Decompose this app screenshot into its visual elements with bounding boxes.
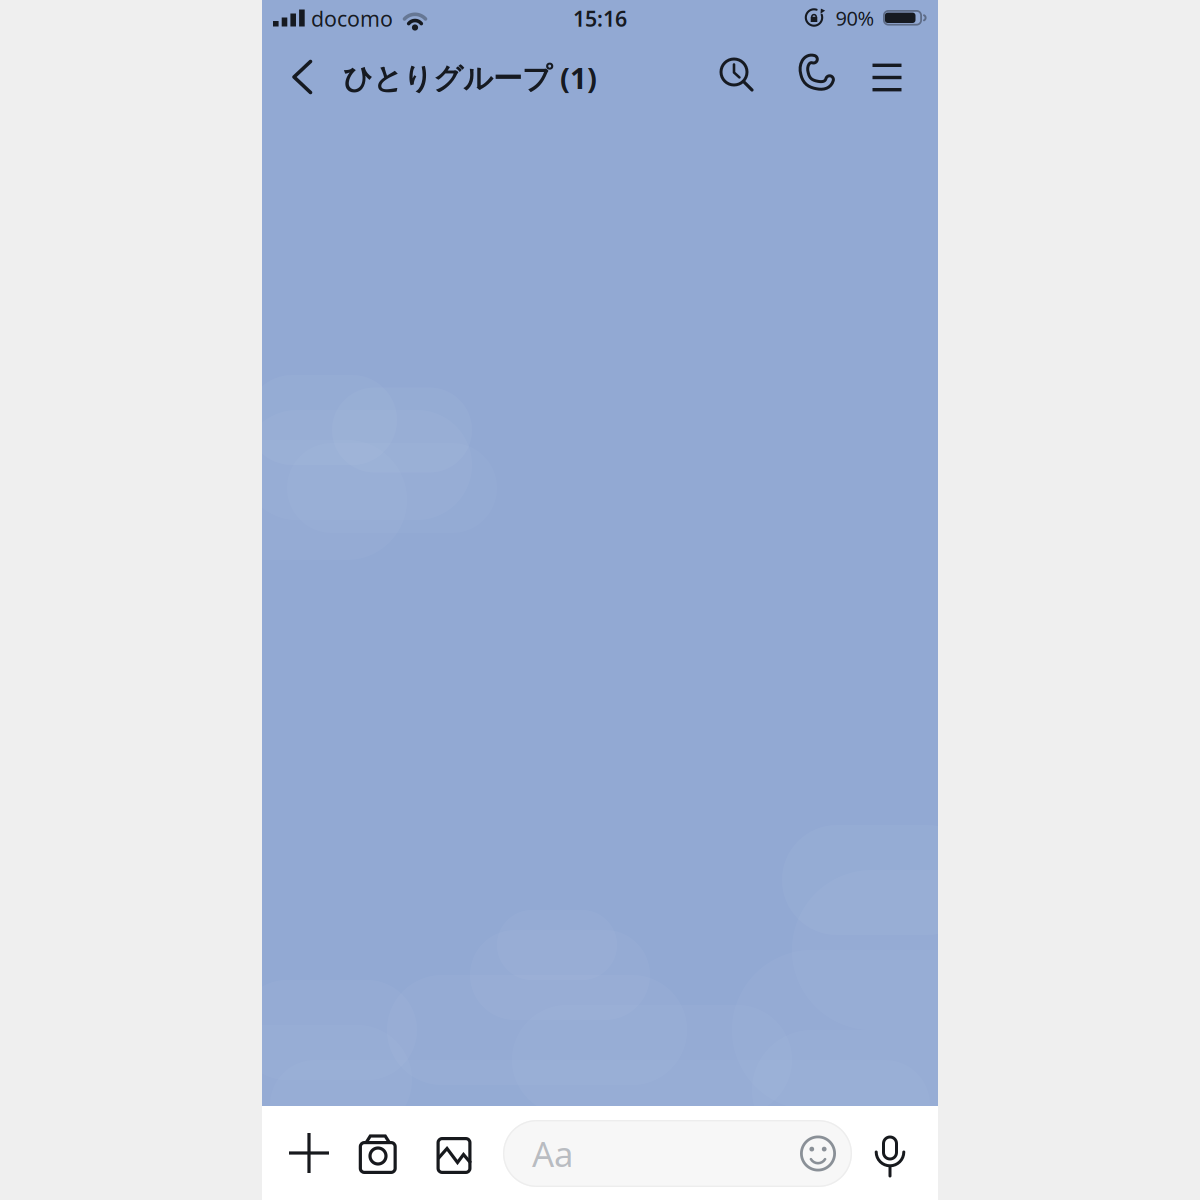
- staticText: ひとりグループ (1): [343, 58, 597, 97]
- button[interactable]: Back: [280, 49, 324, 105]
- staticText: docomo: [311, 4, 393, 33]
- button[interactable]: Voice message: [862, 1118, 918, 1188]
- button[interactable]: Message: [503, 1120, 852, 1187]
- button[interactable]: Search: [715, 55, 759, 99]
- button[interactable]: Call: [793, 52, 837, 96]
- button[interactable]: Camera: [349, 1125, 405, 1181]
- button[interactable]: Photos: [426, 1125, 482, 1181]
- button[interactable]: Menu: [865, 55, 909, 99]
- staticText: 90%: [835, 5, 874, 31]
- staticText: 15:16: [573, 4, 627, 33]
- button[interactable]: Add attachment: [281, 1125, 337, 1181]
- staticText: Aa: [532, 1130, 573, 1176]
